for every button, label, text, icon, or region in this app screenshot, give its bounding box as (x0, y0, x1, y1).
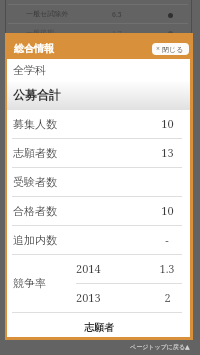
staticText: 6.5 (112, 10, 122, 20)
other: Detail (168, 13, 173, 18)
button[interactable]: 志願者 (7, 317, 190, 337)
staticText: 1.3 (159, 261, 175, 276)
staticText: 2 (164, 290, 171, 305)
button[interactable]: 全学科 (13, 59, 190, 80)
button[interactable]: 志願者数 (7, 139, 190, 168)
button[interactable]: ページトップに戻る▲ (130, 343, 200, 352)
staticText: 全学科 (13, 63, 46, 77)
staticText: 追加内数 (13, 233, 57, 247)
staticText: ページトップに戻る▲ (130, 343, 190, 351)
staticText: 1.7 (112, 29, 122, 39)
staticText: 10 (161, 116, 174, 131)
staticText: 公募合計 (13, 87, 61, 102)
staticText: 総合情報 (14, 42, 54, 55)
button[interactable]: 追加内数 (7, 226, 190, 255)
button[interactable]: 募集人数 (7, 110, 190, 139)
staticText: × (156, 44, 160, 54)
staticText: 2014 (76, 261, 101, 276)
staticText: 募集人数 (13, 117, 57, 131)
staticText: 志願者 (84, 321, 114, 334)
staticText: 13 (161, 145, 174, 160)
staticText: 10 (161, 203, 174, 218)
staticText: - (165, 232, 169, 247)
staticText: 競争率 (13, 276, 46, 290)
staticText: 受験者数 (13, 175, 57, 189)
staticText: 一般後期 (26, 28, 54, 37)
staticText: 閉じる (162, 45, 184, 54)
button[interactable]: 合格者数 (7, 197, 190, 226)
staticText: 志願者数 (13, 146, 57, 160)
staticText: 合格者数 (13, 204, 57, 218)
staticText: 2013 (76, 290, 101, 305)
staticText: 一般セ試除外 (26, 9, 69, 18)
button[interactable]: 受験者数 (7, 168, 190, 197)
button[interactable]: × (152, 43, 189, 55)
